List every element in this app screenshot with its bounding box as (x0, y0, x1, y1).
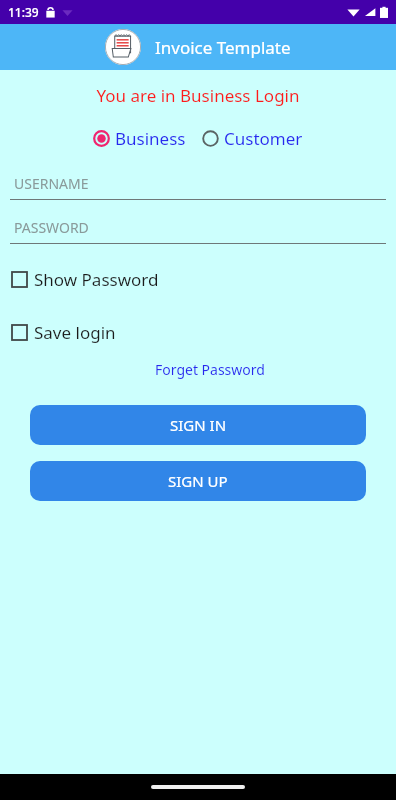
staticText: PASSWORD (14, 218, 89, 237)
staticText: You are in Business Login (0, 84, 396, 107)
button[interactable]: Show Password (0, 266, 396, 293)
staticText: Invoice Template (155, 36, 291, 59)
staticText: Business (115, 127, 186, 150)
other: Home gesture bar (0, 774, 396, 800)
button[interactable]: SIGN IN (30, 405, 366, 445)
button[interactable]: PASSWORD (10, 218, 386, 244)
button[interactable]: Customer (200, 125, 305, 152)
staticText: Save login (34, 321, 116, 344)
button[interactable]: Save login (0, 319, 396, 346)
staticText: SIGN UP (168, 471, 228, 491)
staticText: Show Password (34, 268, 159, 291)
button[interactable]: Business (91, 125, 188, 152)
staticText: SIGN IN (170, 415, 227, 435)
staticText: 11:39 (8, 4, 39, 20)
button[interactable]: SIGN UP (30, 461, 366, 501)
staticText: Customer (224, 127, 303, 150)
button[interactable]: Forget Password (151, 358, 269, 381)
button[interactable]: USERNAME (10, 174, 386, 200)
staticText: USERNAME (14, 174, 89, 193)
